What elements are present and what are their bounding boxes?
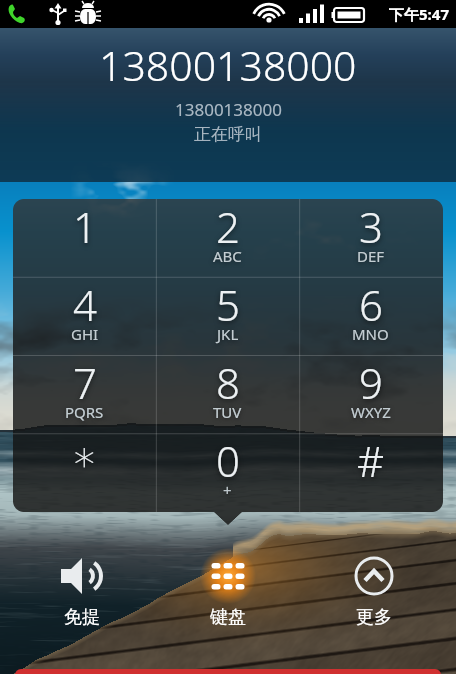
button[interactable]: 8	[156, 355, 299, 433]
staticText: 正在呼叫	[194, 124, 262, 145]
staticText: 9	[359, 354, 383, 411]
button[interactable]: 0	[156, 433, 299, 511]
button[interactable]: 9	[299, 355, 442, 433]
button[interactable]: 6	[299, 277, 442, 355]
staticText: 0	[216, 432, 240, 489]
button[interactable]: 4	[13, 277, 156, 355]
staticText: 13800138000	[175, 98, 282, 121]
button[interactable]: End call	[15, 669, 441, 674]
button[interactable]: 1	[13, 199, 156, 277]
staticText: JKL	[217, 324, 239, 344]
button[interactable]: Keypad	[164, 548, 292, 629]
button[interactable]: 7	[13, 355, 156, 433]
staticText: PQRS	[65, 402, 104, 422]
button[interactable]: 5	[156, 277, 299, 355]
staticText: 2	[216, 199, 240, 255]
staticText: #	[357, 432, 385, 489]
button[interactable]: More	[310, 548, 438, 629]
staticText: 免提	[64, 606, 100, 629]
staticText: DEF	[357, 246, 385, 266]
staticText: 1	[73, 199, 97, 255]
staticText: WXYZ	[351, 402, 391, 422]
staticText: ∗	[71, 432, 98, 481]
staticText: 下午5:47	[389, 4, 449, 24]
button[interactable]: 2	[156, 199, 299, 277]
staticText: 13800138000	[99, 37, 357, 93]
staticText: 6	[359, 276, 383, 333]
button[interactable]: #	[299, 433, 442, 511]
staticText: 4	[73, 276, 97, 333]
button[interactable]: 3	[299, 199, 442, 277]
button[interactable]: Speaker	[18, 548, 146, 629]
staticText: 3	[359, 199, 383, 255]
staticText: 更多	[356, 606, 392, 629]
staticText: MNO	[352, 324, 389, 344]
staticText: GHI	[71, 324, 99, 344]
staticText: 7	[73, 354, 97, 411]
staticText: 键盘	[210, 606, 246, 629]
staticText: ABC	[213, 246, 242, 266]
staticText: 5	[216, 276, 240, 333]
button[interactable]: ∗	[13, 433, 156, 511]
staticText: +	[223, 480, 232, 500]
staticText: TUV	[213, 402, 242, 422]
staticText: 8	[216, 354, 240, 411]
